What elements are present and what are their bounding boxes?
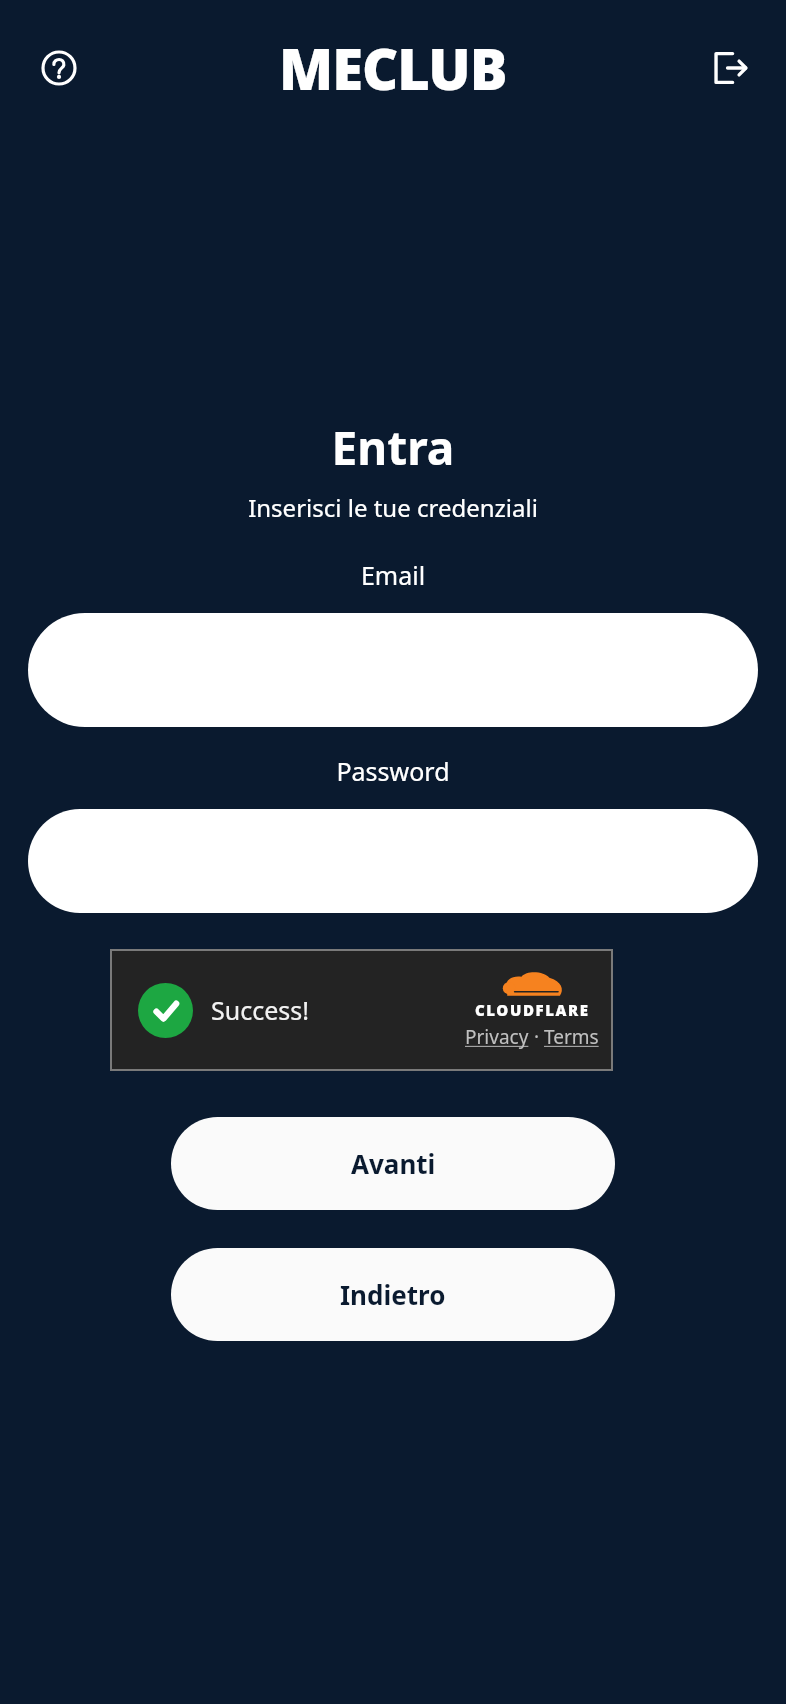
staticText: Avanti (351, 1146, 436, 1181)
staticText: Success! (211, 993, 309, 1027)
button[interactable]: Terms (544, 1024, 599, 1050)
button[interactable]: MECLUB (279, 30, 507, 106)
button[interactable]: Logout (700, 39, 758, 97)
staticText: · (529, 1024, 544, 1050)
button[interactable]: Email field (28, 613, 758, 727)
staticText: CLOUDFLARE (475, 1000, 590, 1020)
button[interactable]: Privacy (465, 1024, 529, 1050)
staticText: Email (0, 558, 786, 592)
staticText: MECLUB (279, 30, 507, 106)
button[interactable]: Help (30, 39, 88, 97)
staticText: Entra (0, 416, 786, 479)
staticText: Inserisci le tue credenziali (0, 491, 786, 524)
button[interactable]: Avanti (171, 1117, 615, 1210)
button[interactable]: Password field (28, 809, 758, 913)
staticText: Indietro (340, 1277, 446, 1312)
button[interactable]: Success! (110, 949, 613, 1071)
staticText: Password (0, 754, 786, 788)
button[interactable]: Indietro (171, 1248, 615, 1341)
